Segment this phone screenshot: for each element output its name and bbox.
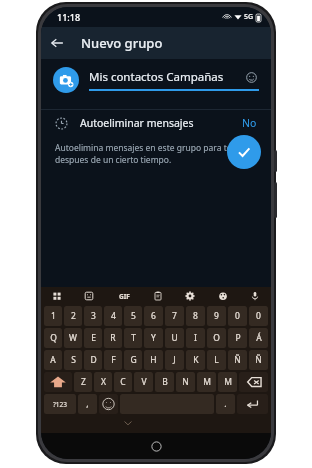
button[interactable]: F (104, 350, 122, 370)
staticText: T (131, 332, 136, 344)
staticText: E (91, 332, 96, 344)
staticText: S (71, 354, 76, 366)
button[interactable]: R (104, 328, 122, 348)
button[interactable]: 2 (64, 306, 82, 326)
button[interactable]: L (207, 350, 226, 370)
button[interactable]: U (165, 328, 184, 348)
button[interactable]: B (155, 372, 174, 392)
button[interactable]: T (124, 328, 142, 348)
staticText: X (101, 376, 106, 388)
button[interactable]: 0 (228, 306, 247, 326)
button[interactable]: Q (44, 328, 62, 348)
button[interactable]: Ñ (249, 350, 268, 370)
button[interactable]: 7 (165, 306, 184, 326)
button[interactable]: N (176, 372, 195, 392)
button[interactable]: , (78, 394, 97, 414)
staticText: 4 (111, 310, 116, 322)
button[interactable]: Y (144, 328, 163, 348)
button[interactable]: Inicio (146, 436, 166, 456)
staticText: B (162, 376, 168, 388)
button[interactable]: Crear grupo (227, 135, 261, 169)
button[interactable]: E (84, 328, 102, 348)
staticText: Autoelimina mensajes en este grupo para … (55, 142, 253, 166)
staticText: V (141, 376, 147, 388)
staticText: A (50, 354, 56, 366)
button[interactable]: S (64, 350, 82, 370)
button[interactable]: K (186, 350, 205, 370)
button[interactable]: Intro (237, 394, 268, 414)
button[interactable]: X (94, 372, 112, 392)
button[interactable]: ?123 (44, 394, 76, 414)
button[interactable]: 5 (124, 306, 142, 326)
staticText: Q (50, 332, 57, 344)
staticText: Autoeliminar mensajes (80, 116, 242, 130)
staticText: Mis contactos Campañas (89, 69, 243, 85)
staticText: 5 (131, 310, 136, 322)
staticText: Y (151, 332, 156, 344)
button[interactable]: Tema (215, 288, 231, 304)
button[interactable]: Emoji (243, 69, 259, 85)
staticText: D (90, 354, 97, 366)
button[interactable]: 3 (84, 306, 102, 326)
button[interactable]: P (228, 328, 247, 348)
staticText: L (214, 354, 219, 366)
button[interactable]: Borrar (239, 372, 268, 392)
staticText: O (213, 332, 220, 344)
staticText: 8 (193, 310, 198, 322)
button[interactable]: Stickers (81, 288, 97, 304)
button[interactable]: G (124, 350, 142, 370)
button[interactable]: Portapapeles (150, 288, 166, 304)
staticText: G (130, 354, 137, 366)
button[interactable]: Más (49, 288, 65, 304)
button[interactable]: J (165, 350, 184, 370)
button[interactable]: A (44, 350, 62, 370)
staticText: M (203, 376, 211, 388)
staticText: 7 (172, 310, 177, 322)
button[interactable]: Voz (247, 288, 263, 304)
staticText: U (171, 332, 178, 344)
staticText: 9 (214, 310, 219, 322)
staticText: ?123 (53, 400, 67, 409)
button[interactable]: Atrás (41, 27, 73, 59)
button[interactable]: Ajustes (182, 288, 198, 304)
button[interactable]: 0 (249, 306, 268, 326)
button[interactable]: D (84, 350, 102, 370)
staticText: W (69, 332, 77, 344)
staticText: . (224, 398, 227, 410)
button[interactable]: M (197, 372, 216, 392)
button[interactable]: H (144, 350, 163, 370)
button[interactable]: Ñ (228, 350, 247, 370)
button[interactable]: Ocultar teclado (119, 415, 137, 431)
button[interactable]: W (64, 328, 82, 348)
staticText: J (173, 354, 176, 366)
button[interactable]: M (218, 372, 237, 392)
button[interactable]: O (207, 328, 226, 348)
staticText: C (120, 376, 126, 388)
button[interactable]: 4 (104, 306, 122, 326)
button[interactable]: Autoeliminar mensajes (41, 110, 271, 136)
button[interactable]: 6 (144, 306, 163, 326)
staticText: R (110, 332, 116, 344)
button[interactable]: GIF (114, 289, 134, 303)
button[interactable]: Emoji (99, 394, 118, 414)
staticText: P (235, 332, 241, 344)
button[interactable]: Mayúsculas (44, 372, 72, 392)
button[interactable]: Z (74, 372, 92, 392)
button[interactable]: C (114, 372, 132, 392)
button[interactable]: . (216, 394, 235, 414)
staticText: Ñ (234, 354, 241, 366)
staticText: Á (256, 332, 262, 344)
button[interactable]: Á (249, 328, 268, 348)
button[interactable]: V (134, 372, 153, 392)
staticText: F (111, 354, 116, 366)
button[interactable]: 8 (186, 306, 205, 326)
staticText: 0 (235, 310, 240, 322)
staticText: 3 (91, 310, 96, 322)
button[interactable]: 9 (207, 306, 226, 326)
staticText: I (194, 332, 197, 344)
staticText: , (86, 398, 89, 410)
button[interactable]: 1 (44, 306, 62, 326)
button[interactable]: Añadir foto de grupo (53, 67, 79, 93)
button[interactable]: I (186, 328, 205, 348)
